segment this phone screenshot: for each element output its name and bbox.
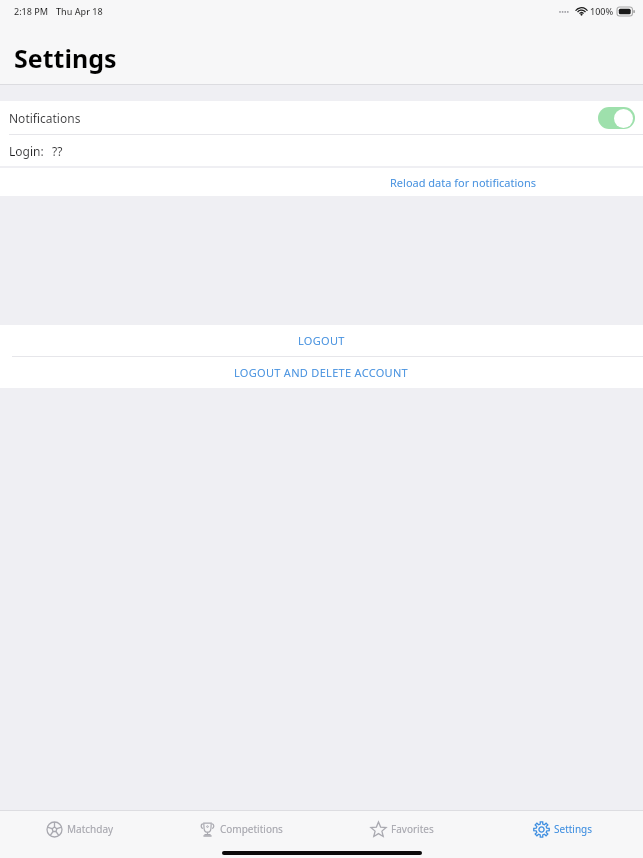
button[interactable]: Settings [482, 811, 643, 847]
button[interactable]: Competitions [160, 811, 321, 847]
button[interactable]: Matchday [0, 811, 160, 847]
staticText: Settings [14, 41, 117, 75]
staticText: Settings [554, 822, 593, 836]
button[interactable]: Reload data for notifications [0, 168, 643, 196]
staticText: Notifications [9, 110, 81, 126]
staticText: Competitions [220, 822, 283, 836]
button[interactable]: Favorites [321, 811, 482, 847]
staticText: Favorites [391, 822, 434, 836]
staticText: 100% [590, 5, 614, 17]
staticText: ?? [52, 143, 63, 159]
button[interactable]: Login: [0, 135, 643, 166]
staticText: Thu Apr 18 [56, 5, 103, 17]
button[interactable]: LOGOUT [0, 325, 643, 356]
staticText: LOGOUT [298, 333, 345, 348]
button[interactable]: Notifications [0, 101, 643, 134]
staticText: Reload data for notifications [390, 175, 536, 190]
button[interactable]: LOGOUT AND DELETE ACCOUNT [0, 357, 643, 388]
staticText: Login: [9, 143, 44, 159]
button[interactable]: Notifications toggle [598, 107, 635, 129]
staticText: 2:18 PM [14, 5, 48, 17]
staticText: LOGOUT AND DELETE ACCOUNT [234, 365, 409, 380]
staticText: Matchday [67, 822, 114, 836]
